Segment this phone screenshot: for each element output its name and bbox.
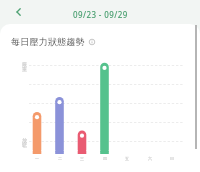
staticText: 四 (103, 156, 107, 161)
staticText: 日 (170, 156, 174, 161)
button[interactable]: 四 (100, 155, 110, 162)
button[interactable] (88, 38, 96, 46)
button[interactable]: 日 (167, 155, 177, 162)
button[interactable]: 二 (55, 155, 65, 162)
staticText: 六 (148, 156, 152, 161)
button[interactable] (10, 3, 28, 21)
staticText: 09/23 - 09/29 (73, 9, 128, 20)
staticText: 一 (35, 156, 39, 161)
staticText: 放 鬆 (22, 137, 27, 149)
button[interactable]: 09/23 - 09/29 (0, 6, 200, 22)
staticText: 嚴 重 (22, 61, 27, 73)
staticText: 五 (125, 156, 129, 161)
button[interactable]: 一 (32, 155, 42, 162)
button[interactable]: 六 (145, 155, 155, 162)
staticText: 二 (58, 156, 62, 161)
staticText: 每日壓力狀態趨勢 (11, 36, 85, 47)
staticText: 三 (80, 156, 84, 161)
button[interactable]: 三 (77, 155, 87, 162)
button[interactable]: 五 (122, 155, 132, 162)
